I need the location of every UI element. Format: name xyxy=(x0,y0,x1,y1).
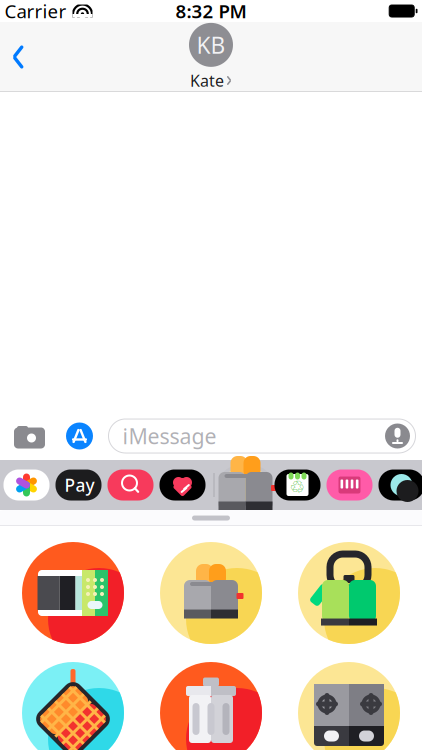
staticText: Pay xyxy=(64,473,94,496)
button[interactable] xyxy=(375,466,422,504)
staticText: 8:32 PM xyxy=(175,0,246,23)
button[interactable] xyxy=(0,466,52,504)
staticText: KB xyxy=(196,30,225,60)
button[interactable]: KB xyxy=(175,23,247,91)
button[interactable]: Sticker xyxy=(156,538,266,648)
button[interactable] xyxy=(156,466,208,504)
staticText: iMessage xyxy=(122,422,216,450)
button[interactable]: Back xyxy=(0,36,38,78)
button[interactable] xyxy=(104,466,156,504)
button[interactable]: iMessage xyxy=(108,419,415,453)
button[interactable]: Sticker xyxy=(156,658,266,750)
staticText: Carrier xyxy=(4,0,66,23)
staticText: ♲ xyxy=(289,477,305,497)
button[interactable]: Apps xyxy=(62,419,96,453)
button[interactable]: Sticker xyxy=(294,658,404,750)
button[interactable]: ♲ xyxy=(271,466,323,504)
button[interactable] xyxy=(52,466,104,504)
button[interactable]: Sticker xyxy=(294,538,404,648)
staticText: Kate xyxy=(190,70,224,91)
button[interactable] xyxy=(323,466,375,504)
button[interactable]: Camera xyxy=(8,418,50,454)
button[interactable]: Sticker xyxy=(18,658,128,750)
button[interactable]: Sticker xyxy=(18,538,128,648)
button[interactable] xyxy=(219,466,271,504)
